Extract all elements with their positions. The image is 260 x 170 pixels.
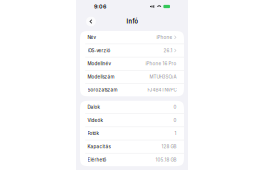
staticText: 105.18 GB [155,157,176,162]
staticText: Modellszám [88,74,115,80]
button[interactable]: iOS-verzió [80,44,184,57]
staticText: 0 [173,118,176,123]
staticText: Név [88,35,97,40]
staticText: Fotók [88,131,99,136]
staticText: 128 GB [161,144,176,149]
button[interactable]: Kapacitás [80,140,184,153]
staticText: 26.1 [164,48,173,53]
staticText: 9:06 [94,3,106,10]
staticText: iPhone [157,35,173,40]
button[interactable]: Modellnév [80,57,184,70]
staticText: Sorozatszám [88,87,118,93]
staticText: iOS-verzió [88,48,111,53]
staticText: Infó [126,18,137,25]
staticText: iPhone 16 Pro [145,61,176,66]
button[interactable]: Név [80,31,184,44]
staticText: FJ4B4TNVPC [147,87,176,93]
staticText: Kapacitás [88,144,111,149]
staticText: Dalok [88,104,100,110]
button[interactable]: Modellszám [80,70,184,83]
button[interactable]: Dalok [80,101,184,113]
staticText: MTUH3SO/A [149,74,176,80]
button[interactable]: Sorozatszám [80,84,184,96]
button[interactable]: Videók [80,114,184,127]
button[interactable]: Back [84,15,97,28]
button[interactable]: Fotók [80,127,184,140]
button[interactable]: Elérhető [80,153,184,166]
staticText: Elérhető [88,157,107,162]
staticText: 0 [173,104,176,110]
staticText: 1 [174,131,176,136]
staticText: Modellnév [88,61,112,66]
staticText: Videók [88,118,103,123]
